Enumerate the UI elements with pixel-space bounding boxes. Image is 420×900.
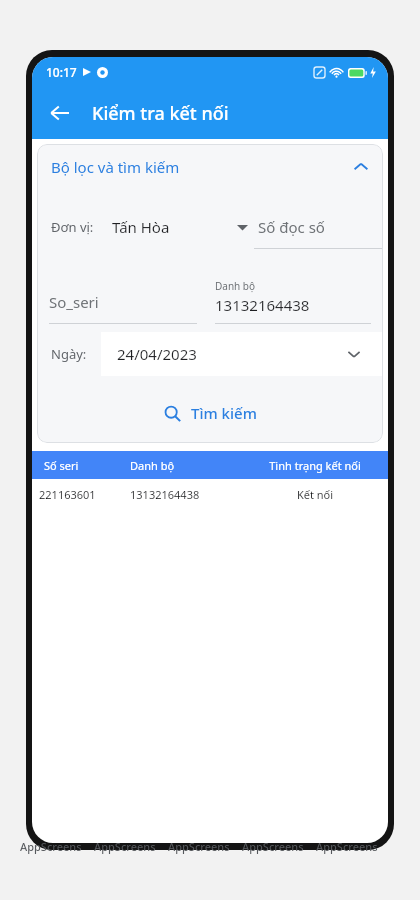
staticText: 24/04/2023 [117, 344, 197, 364]
staticText: 221163601 [39, 487, 130, 502]
button[interactable]: Danh bộ [215, 262, 371, 324]
staticText: AppScreens [94, 839, 156, 854]
staticText: Tìm kiếm [191, 403, 257, 423]
button[interactable]: Tấn Hòa [112, 207, 254, 247]
button[interactable]: Số đọc số [254, 205, 383, 249]
staticText: AppScreens [20, 839, 82, 854]
staticText: Đơn vị: [51, 218, 94, 236]
staticText: 13132164438 [215, 295, 310, 315]
staticText: Kiểm tra kết nối [92, 101, 229, 126]
button[interactable]: So_seri [49, 262, 197, 324]
button[interactable]: 221163601 [32, 479, 388, 509]
staticText: Số đọc số [258, 217, 325, 237]
button[interactable]: Bộ lọc và tìm kiếm [37, 144, 383, 190]
staticText: Số seri [44, 458, 130, 473]
staticText: So_seri [49, 292, 99, 312]
staticText: Danh bộ [130, 458, 242, 473]
staticText: AppScreens [242, 839, 304, 854]
staticText: AppScreens [316, 839, 378, 854]
button[interactable]: 24/04/2023 [101, 332, 383, 376]
staticText: Danh bộ [215, 279, 256, 293]
staticText: Tinh trạng kết nối [242, 458, 388, 473]
staticText: AppScreens [168, 839, 230, 854]
staticText: Bộ lọc và tìm kiếm [51, 157, 180, 177]
staticText: Kết nối [242, 487, 388, 502]
button[interactable]: Tìm kiếm [37, 392, 383, 434]
button[interactable]: Back [40, 93, 80, 133]
staticText: Tấn Hòa [112, 217, 170, 237]
staticText: 10:17 [46, 64, 77, 80]
staticText: Ngày: [51, 345, 87, 363]
staticText: 13132164438 [130, 487, 242, 502]
